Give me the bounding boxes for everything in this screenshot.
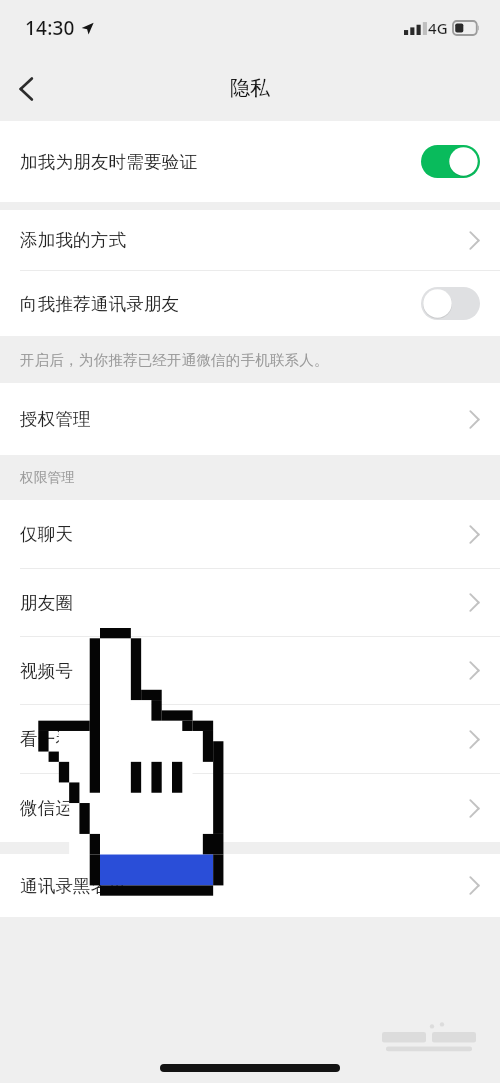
button[interactable]: 仅聊天 (0, 500, 500, 568)
button[interactable]: 看一看 (0, 705, 500, 773)
staticText: 14:30 (25, 15, 75, 41)
staticText: 微信运动 (20, 797, 91, 819)
staticText: 仅聊天 (20, 523, 74, 545)
button[interactable]: 添加我的方式 (0, 210, 500, 270)
staticText: 4G (428, 18, 448, 38)
button[interactable]: 向我推荐通讯录朋友 (0, 271, 500, 336)
button[interactable]: 加我为朋友时需要验证 (0, 121, 500, 202)
button[interactable]: 授权管理 (0, 383, 500, 455)
staticText: 权限管理 (20, 469, 75, 486)
button[interactable]: Toggle on (421, 145, 480, 178)
staticText: 授权管理 (20, 408, 91, 430)
button[interactable]: Toggle off (421, 287, 480, 320)
staticText: 添加我的方式 (20, 229, 127, 251)
button[interactable]: 朋友圈 (0, 569, 500, 636)
staticText: 朋友圈 (20, 592, 74, 614)
staticText: 向我推荐通讯录朋友 (20, 293, 180, 315)
staticText: 看一看 (20, 728, 74, 750)
staticText: 开启后，为你推荐已经开通微信的手机联系人。 (20, 351, 329, 369)
button[interactable]: Back (0, 63, 52, 115)
button[interactable]: 视频号 (0, 637, 500, 704)
staticText: 隐私 (0, 76, 500, 101)
staticText: 通讯录黑名单 (20, 875, 127, 897)
button[interactable]: 微信运动 (0, 774, 500, 842)
button[interactable]: 通讯录黑名单 (0, 854, 500, 917)
staticText: 加我为朋友时需要验证 (20, 151, 197, 173)
staticText: 视频号 (20, 660, 74, 682)
